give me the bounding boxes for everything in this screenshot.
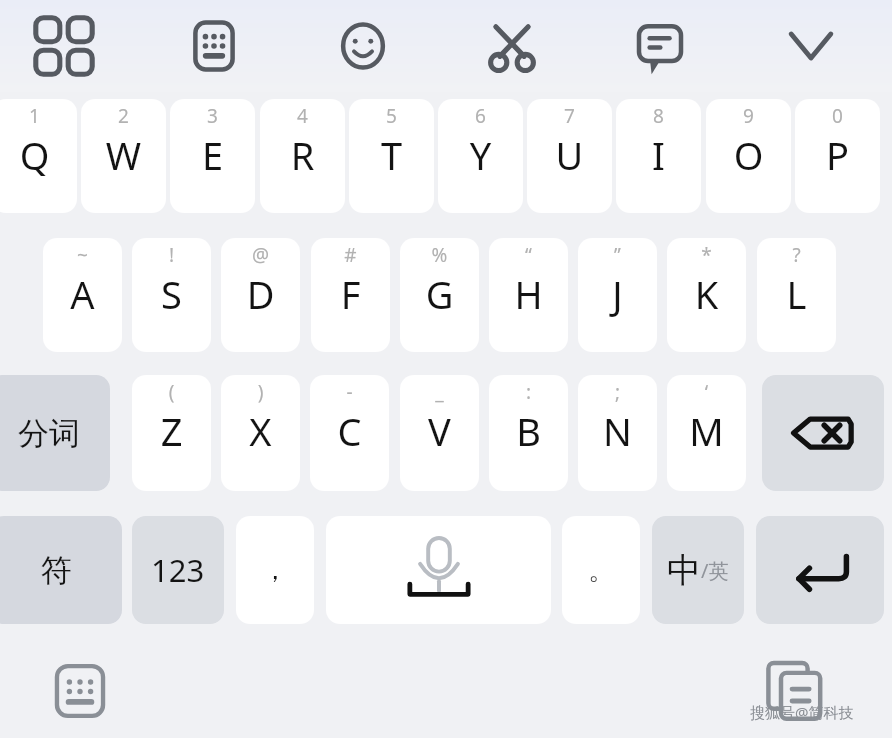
staticText: _ xyxy=(400,379,479,405)
button[interactable]: Keyboard layout xyxy=(184,16,244,76)
button[interactable]: 分词 xyxy=(0,375,110,491)
staticText: 分词 xyxy=(18,414,80,453)
staticText: M xyxy=(667,405,746,457)
staticText: 6 xyxy=(438,103,523,129)
staticText: ‘ xyxy=(667,379,746,405)
staticText: ” xyxy=(578,242,657,268)
button[interactable]: ” xyxy=(578,238,657,352)
staticText: S xyxy=(132,268,211,320)
staticText: N xyxy=(578,405,657,457)
staticText: 符 xyxy=(41,551,72,590)
staticText: ~ xyxy=(43,242,122,268)
button[interactable]: ‘ xyxy=(667,375,746,491)
button[interactable]: Collapse keyboard xyxy=(781,16,841,76)
button[interactable]: Enter xyxy=(756,516,884,624)
staticText: I xyxy=(616,129,701,181)
staticText: “ xyxy=(489,242,568,268)
button[interactable]: ( xyxy=(132,375,211,491)
staticText: A xyxy=(43,268,122,320)
staticText: - xyxy=(310,379,389,405)
button[interactable]: ? xyxy=(757,238,836,352)
staticText: C xyxy=(310,405,389,457)
button[interactable]: Backspace xyxy=(762,375,884,491)
button[interactable]: ) xyxy=(221,375,300,491)
staticText: 7 xyxy=(527,103,612,129)
staticText: ( xyxy=(132,379,211,405)
staticText: L xyxy=(757,268,836,320)
staticText: @ xyxy=(221,242,300,268)
button[interactable]: Clipboard xyxy=(760,658,830,720)
staticText: 中 xyxy=(667,549,701,592)
staticText: X xyxy=(221,405,300,457)
button[interactable]: * xyxy=(667,238,746,352)
staticText: R xyxy=(260,129,345,181)
button[interactable]: ; xyxy=(578,375,657,491)
staticText: T xyxy=(349,129,434,181)
staticText: H xyxy=(489,268,568,320)
button[interactable]: ~ xyxy=(43,238,122,352)
staticText: 8 xyxy=(616,103,701,129)
button[interactable]: 6 xyxy=(438,99,523,213)
staticText: : xyxy=(489,379,568,405)
button[interactable]: 1 xyxy=(0,99,77,213)
staticText: D xyxy=(221,268,300,320)
button[interactable]: ! xyxy=(132,238,211,352)
staticText: 搜狐号@简科技 xyxy=(750,702,854,722)
button[interactable]: _ xyxy=(400,375,479,491)
button[interactable]: Space xyxy=(326,516,551,624)
button[interactable]: 3 xyxy=(170,99,255,213)
button[interactable]: Cut xyxy=(482,16,542,76)
button[interactable]: - xyxy=(310,375,389,491)
staticText: 。 xyxy=(588,554,614,587)
staticText: 3 xyxy=(170,103,255,129)
staticText: P xyxy=(795,129,880,181)
button[interactable]: % xyxy=(400,238,479,352)
button[interactable]: 123 xyxy=(132,516,224,624)
staticText: B xyxy=(489,405,568,457)
staticText: 0 xyxy=(795,103,880,129)
staticText: Y xyxy=(438,129,523,181)
staticText: 2 xyxy=(81,103,166,129)
button[interactable]: “ xyxy=(489,238,568,352)
staticText: ) xyxy=(221,379,300,405)
button[interactable]: 7 xyxy=(527,99,612,213)
button[interactable]: @ xyxy=(221,238,300,352)
staticText: K xyxy=(667,268,746,320)
button[interactable]: Keyboard settings xyxy=(48,662,112,720)
button[interactable]: 9 xyxy=(706,99,791,213)
button[interactable]: Emoji xyxy=(333,16,393,76)
staticText: # xyxy=(311,242,390,268)
staticText: 123 xyxy=(151,549,205,591)
button[interactable]: 。 xyxy=(562,516,640,624)
staticText: ; xyxy=(578,379,657,405)
staticText: ? xyxy=(757,242,836,268)
button[interactable]: 2 xyxy=(81,99,166,213)
button[interactable]: : xyxy=(489,375,568,491)
staticText: O xyxy=(706,129,791,181)
staticText: Q xyxy=(0,129,77,181)
staticText: * xyxy=(667,242,746,268)
staticText: 5 xyxy=(349,103,434,129)
staticText: % xyxy=(400,242,479,268)
button[interactable]: # xyxy=(311,238,390,352)
staticText: 9 xyxy=(706,103,791,129)
staticText: 4 xyxy=(260,103,345,129)
staticText: W xyxy=(81,129,166,181)
button[interactable]: 4 xyxy=(260,99,345,213)
staticText: F xyxy=(311,268,390,320)
button[interactable]: 0 xyxy=(795,99,880,213)
staticText: Z xyxy=(132,405,211,457)
button[interactable]: 8 xyxy=(616,99,701,213)
button[interactable]: ， xyxy=(236,516,314,624)
button[interactable]: 5 xyxy=(349,99,434,213)
staticText: 1 xyxy=(0,103,77,129)
button[interactable]: 符 xyxy=(0,516,122,624)
staticText: E xyxy=(170,129,255,181)
button[interactable]: 中 xyxy=(652,516,744,624)
button[interactable]: Grid xyxy=(34,16,94,76)
staticText: G xyxy=(400,268,479,320)
staticText: U xyxy=(527,129,612,181)
staticText: /英 xyxy=(701,557,729,584)
button[interactable]: Messages xyxy=(630,16,690,76)
staticText: ! xyxy=(132,242,211,268)
